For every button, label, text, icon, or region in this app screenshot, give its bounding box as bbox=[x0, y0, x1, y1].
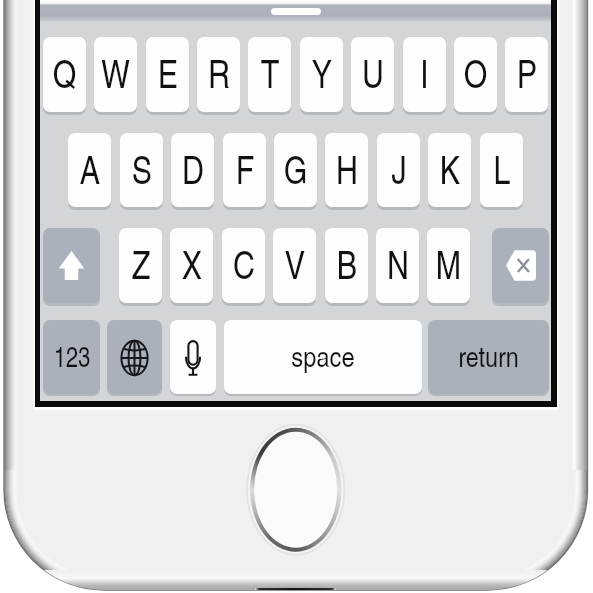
button[interactable]: X bbox=[170, 228, 213, 303]
button[interactable]: A bbox=[68, 133, 111, 207]
staticText: G bbox=[284, 142, 307, 195]
staticText: W bbox=[101, 46, 130, 99]
staticText: return bbox=[458, 336, 519, 375]
button[interactable]: D bbox=[171, 133, 214, 207]
staticText: X bbox=[182, 237, 202, 290]
button[interactable]: R bbox=[197, 37, 240, 112]
button[interactable]: H bbox=[325, 133, 368, 207]
staticText: F bbox=[235, 142, 254, 195]
button[interactable]: W bbox=[94, 37, 137, 112]
staticText: N bbox=[387, 237, 409, 290]
staticText: D bbox=[182, 142, 204, 195]
button[interactable]: T bbox=[248, 37, 291, 112]
staticText: Q bbox=[53, 46, 76, 99]
button[interactable]: C bbox=[222, 228, 265, 303]
staticText: C bbox=[233, 237, 255, 290]
button[interactable]: S bbox=[120, 133, 163, 207]
button[interactable]: Y bbox=[300, 37, 343, 112]
button[interactable]: Shift bbox=[43, 228, 100, 303]
staticText: O bbox=[464, 46, 487, 99]
button[interactable]: L bbox=[480, 133, 523, 207]
staticText: U bbox=[362, 46, 384, 99]
button[interactable]: I bbox=[403, 37, 446, 112]
staticText: A bbox=[80, 142, 100, 195]
button[interactable]: G bbox=[274, 133, 317, 207]
staticText: I bbox=[420, 46, 429, 99]
button[interactable]: F bbox=[223, 133, 266, 207]
staticText: B bbox=[336, 237, 357, 290]
button[interactable]: J bbox=[377, 133, 420, 207]
button[interactable]: 123 bbox=[43, 320, 100, 394]
staticText: 123 bbox=[54, 335, 90, 375]
button[interactable]: Backspace bbox=[492, 228, 549, 303]
button[interactable]: return bbox=[428, 320, 549, 394]
staticText: S bbox=[132, 142, 152, 195]
button[interactable]: K bbox=[428, 133, 471, 207]
staticText: K bbox=[439, 142, 460, 195]
button[interactable]: V bbox=[273, 228, 316, 303]
button[interactable]: E bbox=[146, 37, 189, 112]
button[interactable]: Next keyboard bbox=[107, 320, 162, 394]
button[interactable]: U bbox=[351, 37, 394, 112]
button[interactable]: M bbox=[427, 228, 470, 303]
button[interactable]: Q bbox=[43, 37, 86, 112]
button[interactable]: O bbox=[454, 37, 497, 112]
staticText: M bbox=[436, 237, 461, 290]
button[interactable]: B bbox=[325, 228, 368, 303]
staticText: space bbox=[291, 335, 355, 375]
staticText: E bbox=[158, 46, 178, 99]
button[interactable]: Z bbox=[119, 228, 162, 303]
button[interactable]: space bbox=[224, 320, 422, 394]
staticText: Y bbox=[311, 46, 332, 99]
staticText: V bbox=[284, 237, 305, 290]
button[interactable]: P bbox=[505, 37, 548, 112]
staticText: P bbox=[516, 46, 537, 99]
staticText: R bbox=[208, 46, 230, 99]
staticText: J bbox=[391, 142, 407, 195]
button[interactable]: N bbox=[376, 228, 419, 303]
staticText: Z bbox=[131, 237, 150, 290]
staticText: L bbox=[493, 142, 511, 195]
staticText: T bbox=[260, 46, 279, 99]
staticText: H bbox=[336, 142, 358, 195]
button[interactable]: Dictate bbox=[170, 320, 216, 394]
button[interactable]: Home bbox=[248, 424, 346, 554]
